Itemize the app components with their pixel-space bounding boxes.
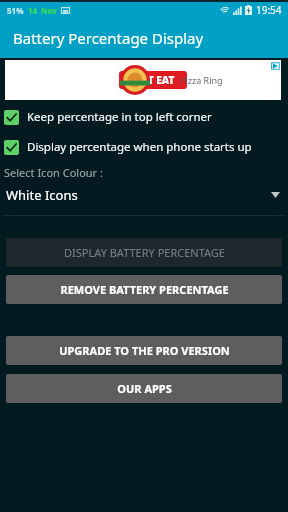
- staticText: Nov: [41, 5, 57, 16]
- button[interactable]: UPGRADE TO THE PRO VERSION: [6, 336, 282, 365]
- staticText: OUR APPS: [117, 381, 172, 396]
- staticText: Pizza Ring: [180, 74, 223, 86]
- button[interactable]: Advertisement: [5, 60, 281, 100]
- button[interactable]: REMOVE BATTERY PERCENTAGE: [6, 275, 282, 304]
- staticText: 19:54: [256, 3, 282, 17]
- staticText: Battery Percentage Display: [13, 28, 204, 48]
- staticText: White Icons: [6, 186, 78, 204]
- staticText: 51%: [7, 5, 24, 16]
- button[interactable]: OUR APPS: [6, 374, 282, 403]
- button[interactable]: White Icons: [0, 186, 288, 216]
- staticText: Keep percentage in top left corner: [27, 109, 212, 125]
- staticText: DISPLAY BATTERY PERCENTAGE: [64, 245, 225, 260]
- button[interactable]: Display percentage when phone starts up: [0, 137, 288, 157]
- staticText: UPGRADE TO THE PRO VERSION: [59, 343, 230, 358]
- button[interactable]: DISPLAY BATTERY PERCENTAGE: [6, 238, 282, 267]
- staticText: JUST EAT: [131, 73, 175, 87]
- staticText: Select Icon Colour :: [4, 165, 103, 180]
- staticText: REMOVE BATTERY PERCENTAGE: [60, 282, 229, 297]
- staticText: 14: [28, 5, 38, 16]
- staticText: Display percentage when phone starts up: [27, 139, 252, 155]
- button[interactable]: Keep percentage in top left corner: [0, 107, 288, 127]
